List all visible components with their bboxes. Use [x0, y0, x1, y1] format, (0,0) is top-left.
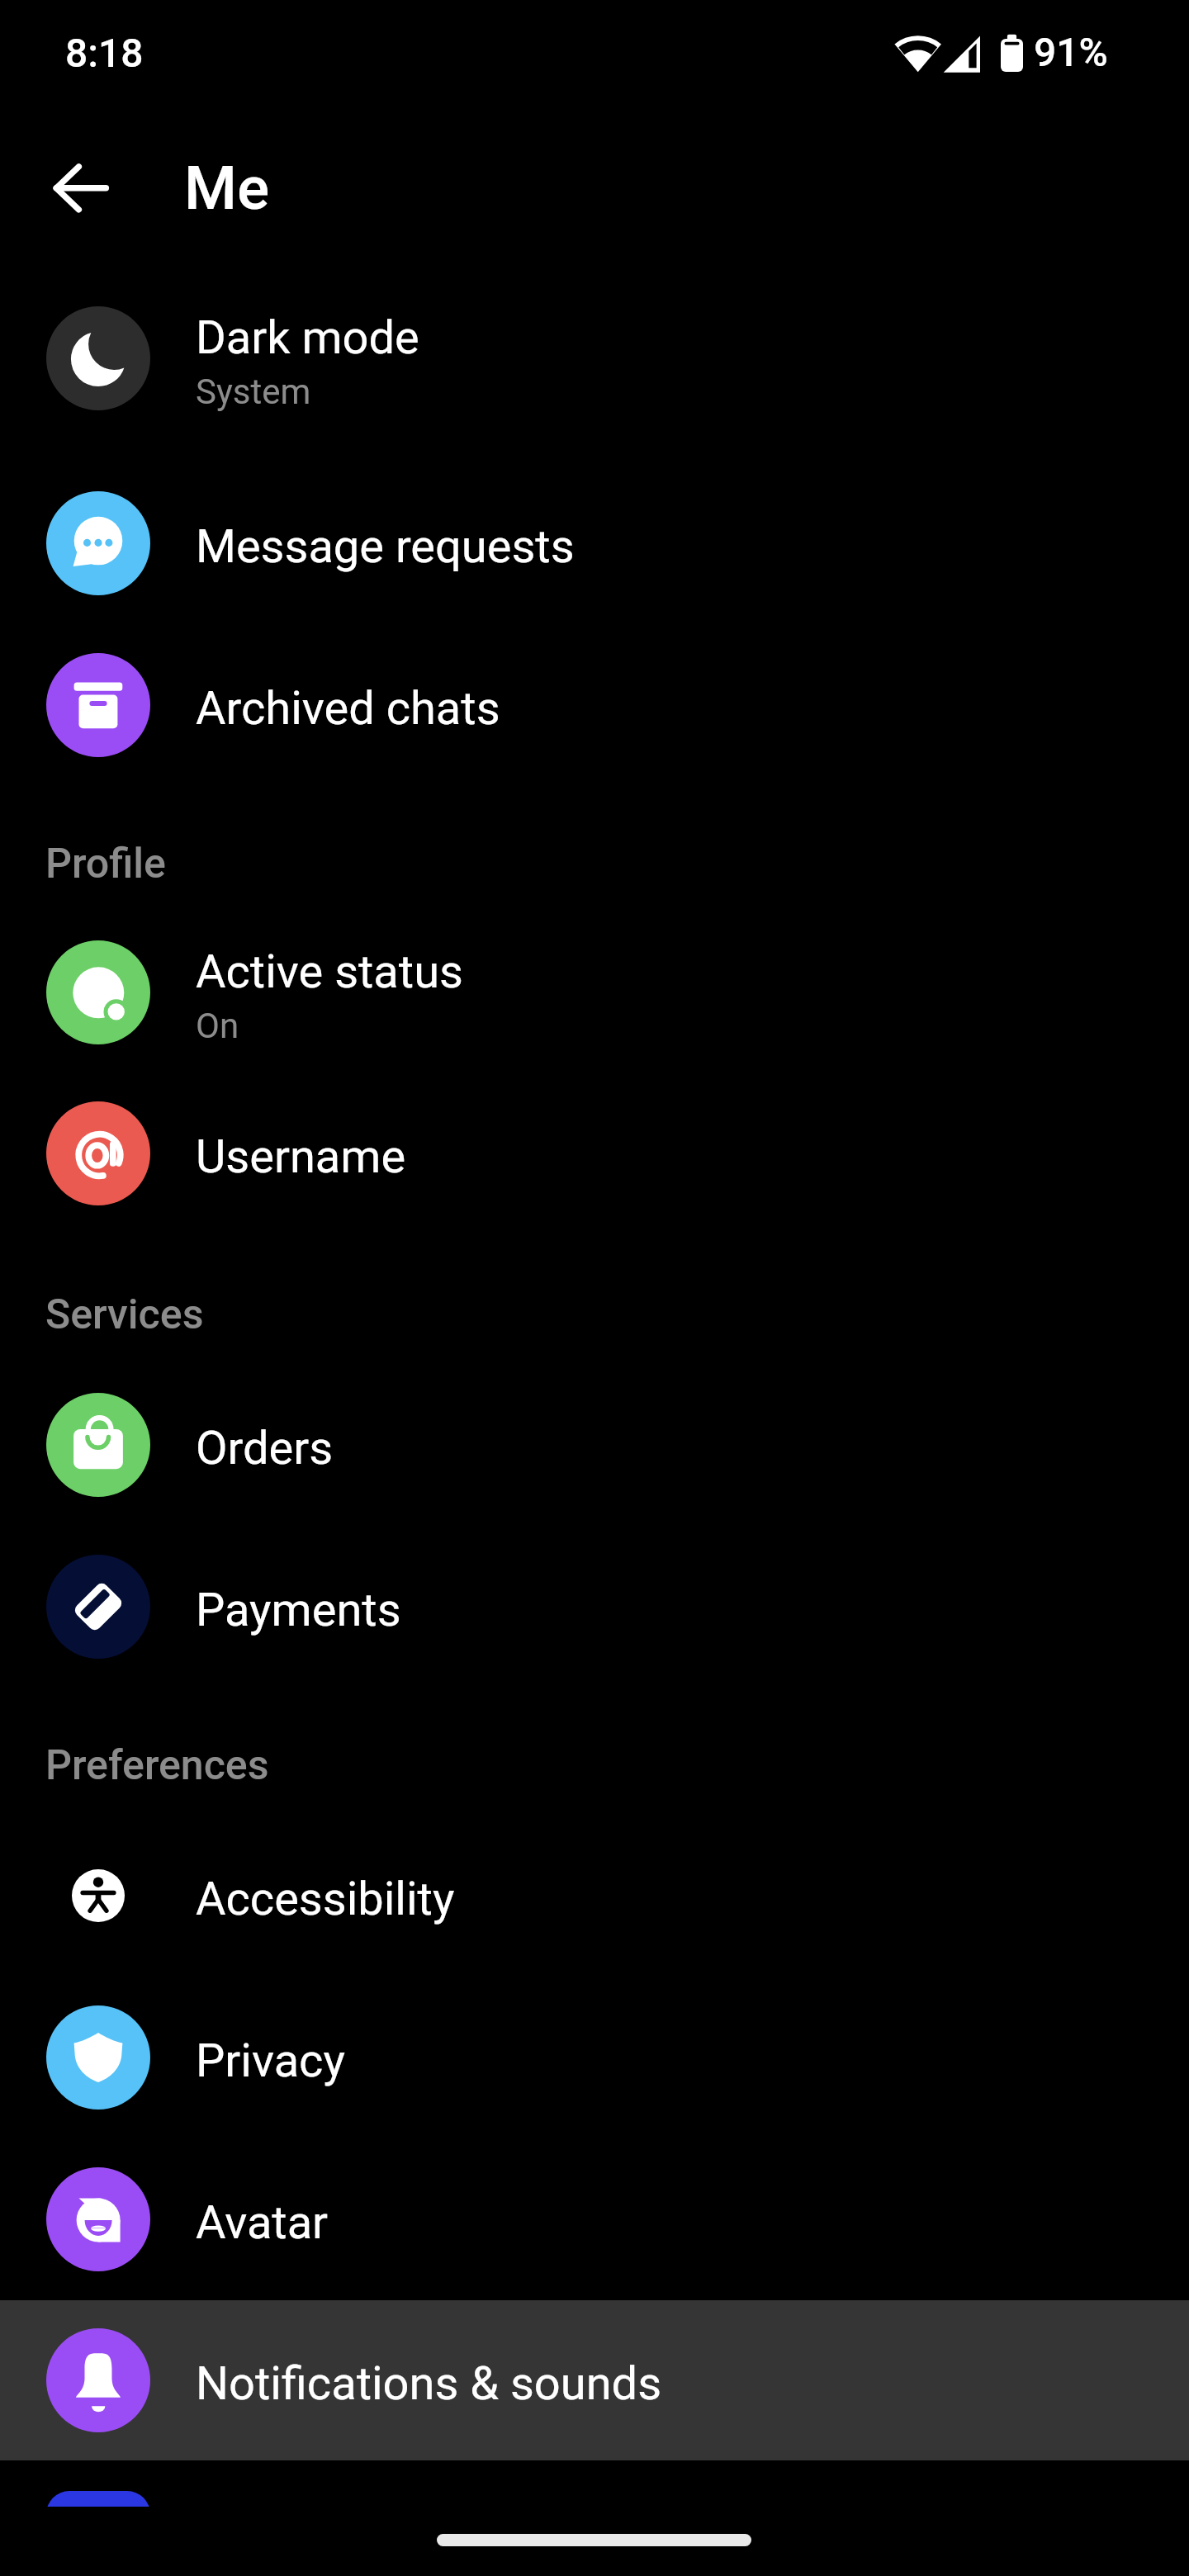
staticText: Active status — [196, 945, 463, 999]
button[interactable]: Active status — [0, 888, 1189, 1096]
staticText: Notifications & sounds — [196, 2356, 662, 2411]
button[interactable]: Dark mode — [0, 253, 1189, 462]
staticText: Payments — [196, 1583, 401, 1637]
staticText: Accessibility — [196, 1872, 455, 1926]
staticText: Avatar — [196, 2195, 329, 2250]
button[interactable]: Privacy — [0, 1977, 1189, 2138]
button[interactable]: Avatar — [0, 2138, 1189, 2300]
staticText: Dark mode — [196, 310, 419, 365]
staticText: Username — [196, 1129, 406, 1184]
button[interactable]: Payments — [0, 1526, 1189, 1688]
staticText: Profile — [45, 840, 166, 888]
staticText: 8:18 — [65, 30, 144, 76]
staticText: Message requests — [196, 519, 575, 574]
staticText: Services — [45, 1290, 204, 1339]
button[interactable] — [0, 2460, 1189, 2507]
staticText: Orders — [196, 1421, 334, 1475]
staticText: System — [196, 372, 311, 412]
button[interactable]: Archived chats — [0, 624, 1189, 786]
staticText: 91% — [1034, 29, 1108, 75]
staticText: On — [196, 1006, 239, 1046]
staticText: Privacy — [196, 2034, 345, 2088]
button[interactable]: Username — [0, 1073, 1189, 1234]
button[interactable]: Notifications & sounds — [0, 2300, 1189, 2460]
staticText: Archived chats — [196, 681, 500, 736]
staticText: Preferences — [45, 1741, 269, 1790]
button[interactable]: Message requests — [0, 462, 1189, 624]
button[interactable]: Back — [31, 139, 130, 238]
button[interactable]: Orders — [0, 1364, 1189, 1526]
staticText: Me — [184, 153, 270, 224]
button[interactable]: Accessibility — [0, 1815, 1189, 1977]
